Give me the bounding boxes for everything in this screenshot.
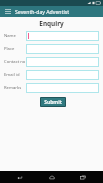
staticText: Email id bbox=[4, 72, 20, 78]
button[interactable]: Back bbox=[9, 171, 31, 183]
staticText: Place bbox=[4, 46, 15, 52]
button[interactable]: Submit bbox=[40, 97, 66, 107]
staticText: Remarks bbox=[4, 85, 22, 91]
staticText: Seventh-day Adventist bbox=[15, 8, 70, 15]
button[interactable] bbox=[26, 70, 99, 80]
button[interactable]: Home bbox=[41, 171, 63, 183]
button[interactable]: Recent apps bbox=[72, 171, 94, 183]
button[interactable]: Open navigation menu bbox=[3, 7, 12, 16]
staticText: Name bbox=[4, 33, 16, 39]
staticText: Submit bbox=[44, 99, 62, 106]
staticText: Enquiry bbox=[0, 19, 103, 28]
button[interactable] bbox=[26, 31, 99, 41]
button[interactable] bbox=[26, 83, 99, 93]
button[interactable] bbox=[26, 57, 99, 67]
button[interactable] bbox=[26, 44, 99, 54]
staticText: Contact no bbox=[4, 59, 26, 65]
